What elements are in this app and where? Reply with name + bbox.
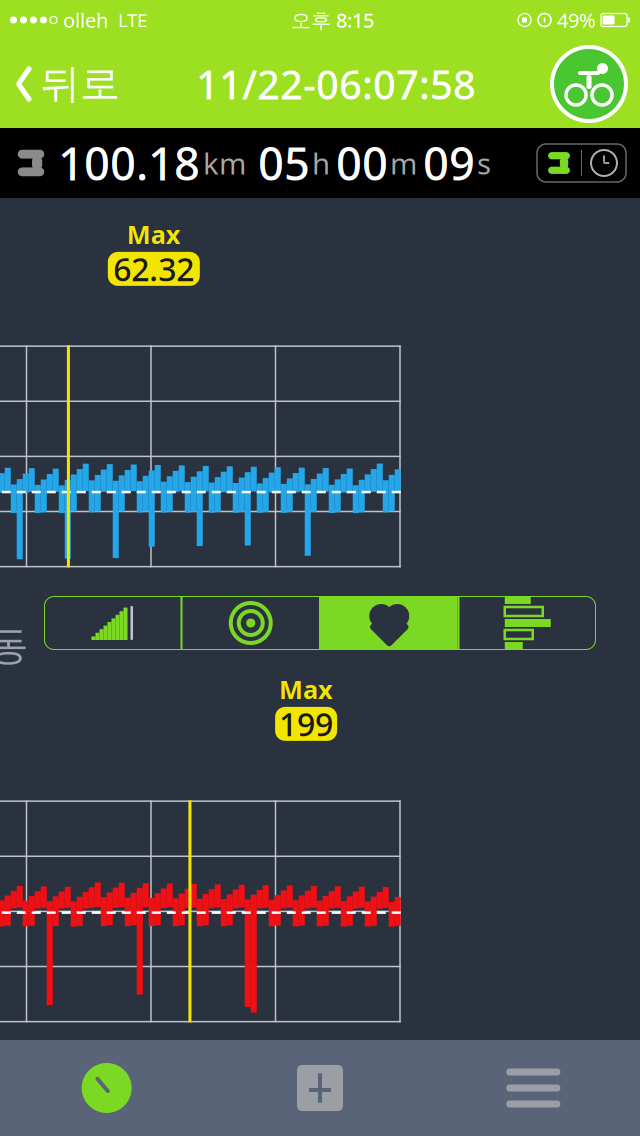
staticText: 50.1: [305, 583, 368, 626]
button[interactable]: Activity type: cycling: [552, 47, 640, 121]
staticText: 66.8: [470, 583, 533, 626]
staticText: km: [203, 143, 246, 182]
button[interactable]: Summary: [459, 596, 596, 650]
staticText: olleh: [63, 7, 108, 33]
button[interactable]: Duration: [582, 144, 626, 182]
staticText: 83.5: [634, 1038, 640, 1081]
button[interactable]: Charts: [213, 1040, 427, 1136]
button[interactable]: Menu: [427, 1040, 640, 1136]
staticText: 62.32: [113, 248, 194, 290]
staticText: 49%: [557, 7, 596, 33]
staticText: h: [312, 143, 330, 182]
staticText: 05: [258, 133, 310, 193]
staticText: 50.1: [305, 1038, 368, 1081]
staticText: 66.8: [470, 1038, 533, 1081]
staticText: 00: [336, 133, 388, 193]
staticText: 199: [279, 703, 333, 745]
staticText: 오후 8:15: [291, 7, 374, 33]
staticText: Max: [279, 672, 333, 706]
button[interactable]: Elevation: [44, 596, 180, 650]
button[interactable]: Speed, selected: [0, 1040, 213, 1136]
staticText: 09: [423, 133, 475, 193]
staticText: 16.7: [0, 1038, 39, 1081]
staticText: s: [477, 143, 491, 182]
staticText: m: [390, 143, 417, 182]
staticText: 11/22-06:07:58: [196, 57, 476, 110]
button[interactable]: Distance: [537, 144, 581, 182]
staticText: 100.18: [58, 133, 200, 193]
staticText: Max: [127, 217, 181, 251]
button[interactable]: Heart rate, selected: [321, 596, 457, 650]
button[interactable]: 뒤로: [0, 53, 120, 114]
staticText: 심장박동: [0, 621, 28, 670]
staticText: 뒤로: [40, 59, 120, 108]
staticText: 33.4: [140, 1038, 203, 1081]
staticText: LTE: [118, 8, 147, 32]
staticText: 33.4: [140, 583, 203, 626]
button[interactable]: Cadence: [182, 596, 319, 650]
